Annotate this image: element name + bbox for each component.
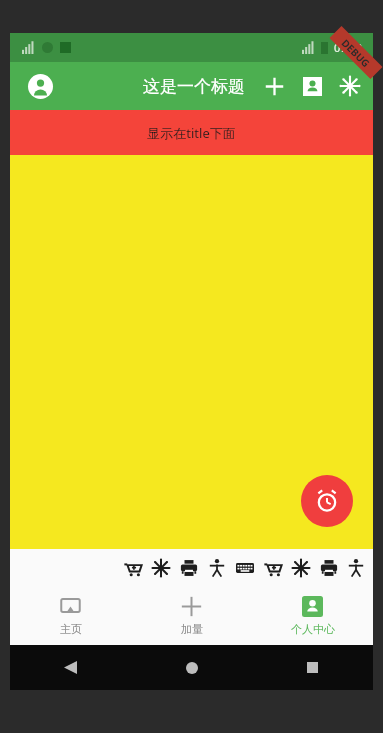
staticText: 这是一个标题 <box>143 76 245 97</box>
button[interactable]: Snowflake <box>147 551 175 585</box>
button[interactable]: Back <box>10 645 131 690</box>
button[interactable]: 个人中心 <box>252 587 373 645</box>
button[interactable]: Print <box>175 551 203 585</box>
staticText: DEBUG <box>339 36 373 70</box>
button[interactable]: Cart <box>119 551 147 585</box>
staticText: 07:42 <box>334 40 363 55</box>
button[interactable]: Add <box>255 67 293 105</box>
staticText: 加量 <box>181 622 203 636</box>
staticText: 显示在title下面 <box>147 124 236 142</box>
button[interactable]: Cart <box>259 551 287 585</box>
button[interactable]: Account <box>20 66 60 106</box>
button[interactable]: Contacts <box>293 67 331 105</box>
staticText: 主页 <box>60 622 82 636</box>
button[interactable]: Snowflake <box>331 67 369 105</box>
button[interactable]: Alarm <box>301 475 353 527</box>
button[interactable]: 主页 <box>10 587 131 645</box>
button[interactable]: Recents <box>252 645 373 690</box>
button[interactable]: Keyboard <box>231 551 259 585</box>
button[interactable]: Home <box>131 645 252 690</box>
button[interactable]: Accessibility <box>203 551 231 585</box>
button[interactable]: 加量 <box>131 587 252 645</box>
button[interactable]: Snowflake <box>287 551 315 585</box>
button[interactable]: Accessibility <box>343 551 369 585</box>
button[interactable]: Print <box>315 551 343 585</box>
staticText: 个人中心 <box>291 622 335 636</box>
button[interactable]: 显示在title下面 <box>10 110 373 155</box>
